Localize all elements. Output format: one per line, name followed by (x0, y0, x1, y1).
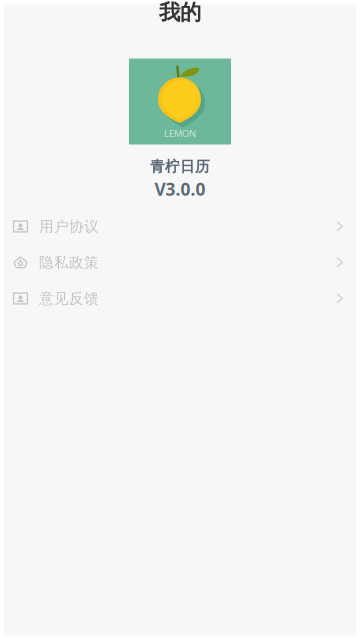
staticText: 隐私政策 (39, 253, 99, 271)
button[interactable]: 隐私政策 (4, 244, 356, 280)
button[interactable]: 用户协议 (4, 208, 356, 244)
staticText: 意见反馈 (39, 289, 99, 307)
staticText: LEMON (164, 127, 196, 140)
staticText: 用户协议 (39, 217, 99, 235)
staticText: 青柠日历 (150, 157, 210, 175)
button[interactable]: 意见反馈 (4, 280, 356, 316)
staticText: V3.0.0 (154, 177, 205, 200)
staticText: 我的 (159, 0, 201, 26)
